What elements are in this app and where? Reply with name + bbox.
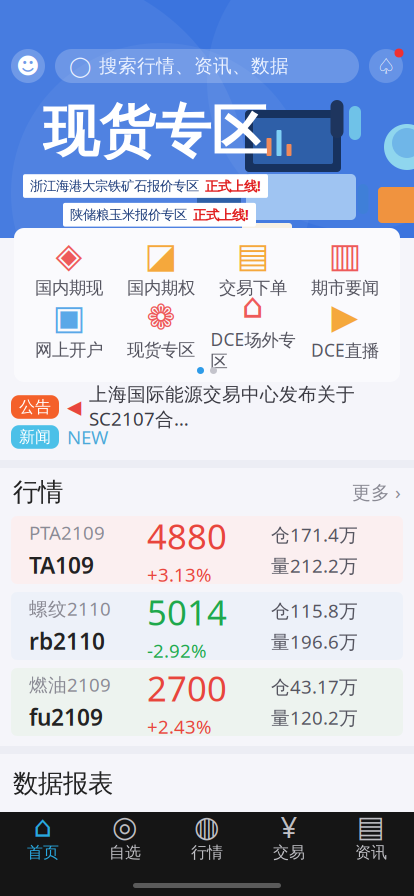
staticText: ▤ [236,236,269,275]
staticText: 国内期权 [127,277,195,299]
staticText: DCE场外专区 [210,328,295,372]
staticText: 量120.2万 [271,705,358,730]
button[interactable]: ◍ [166,812,248,864]
button[interactable]: 螺纹2110 [11,592,403,660]
staticText: 螺纹2110 [29,596,111,621]
button[interactable]: 新闻 [0,422,414,452]
staticText: ¥ [280,807,297,846]
staticText: rb2110 [29,626,105,656]
staticText: 新闻 [19,427,51,447]
staticText: 行情 [13,476,63,507]
staticText: 2700 [147,665,227,711]
staticText: 首页 [27,843,59,862]
button[interactable]: ▶ [299,300,391,362]
staticText: ◀ [67,396,81,418]
staticText: ▣ [52,298,85,337]
staticText: 正式上线! [193,206,249,224]
button[interactable]: ¥ [248,812,330,864]
button[interactable]: ◯ [55,49,359,83]
button[interactable]: ◎ [84,812,166,864]
button[interactable]: 通知 [369,49,403,83]
staticText: 量196.6万 [271,629,358,654]
button[interactable]: ⌂ [207,300,299,362]
staticText: ♤ [376,54,395,78]
staticText: ▤ [357,810,385,843]
staticText: NEW [67,425,108,449]
staticText: ◯ [69,55,91,77]
staticText: ⌂ [242,286,264,325]
staticText: 交易下单 [219,277,287,299]
staticText: 网上开户 [35,339,103,361]
staticText: 期市要闻 [311,277,379,299]
staticText: 仓171.4万 [271,522,358,547]
staticText: 量212.2万 [271,553,358,578]
button[interactable]: 公告 [0,392,414,422]
button[interactable]: ▤ [330,812,412,864]
staticText: +3.13% [147,562,212,587]
staticText: ◎ [112,810,138,843]
staticText: 资讯 [355,843,387,862]
staticText: TA109 [29,550,94,580]
staticText: 浙江海港大宗铁矿石报价专区 [30,178,199,194]
button[interactable]: ▥ [299,238,391,300]
staticText: 行情 [191,843,223,862]
staticText: 更多 › [352,480,401,504]
button[interactable]: PTA2109 [11,516,403,584]
staticText: 公告 [19,397,51,417]
staticText: 陕储粮玉米报价专区 [70,207,187,223]
staticText: +2.43% [147,714,212,739]
staticText: 交易 [273,843,305,862]
button[interactable]: 我的账户 [11,49,45,83]
button[interactable]: ▣ [23,300,115,362]
staticText: DCE直播 [311,338,379,361]
staticText: -2.92% [147,638,207,663]
staticText: 现货专区 [43,97,267,166]
staticText: 上海国际能源交易中心发布关于SC2107合… [89,383,355,431]
staticText: PTA2109 [29,520,105,545]
button[interactable]: ⌂ [2,812,84,864]
staticText: ◍ [194,810,220,843]
staticText: ⌂ [33,810,52,843]
staticText: ◈ [55,236,82,275]
staticText: ☻ [16,53,40,79]
staticText: 自选 [109,843,141,862]
staticText: 4880 [147,513,227,559]
staticText: 正式上线! [205,177,261,195]
button[interactable]: ▤ [207,238,299,300]
button[interactable]: ◈ [23,238,115,300]
button[interactable]: 燃油2109 [11,668,403,736]
staticText: ▶ [331,297,358,336]
staticText: 5014 [147,589,227,635]
staticText: 搜索行情、资讯、数据 [99,54,289,77]
staticText: 仓115.8万 [271,598,358,623]
button[interactable]: ❁ [115,300,207,362]
staticText: 现货专区 [127,339,195,361]
staticText: 仓43.17万 [271,674,358,699]
staticText: 国内期现 [35,277,103,299]
button[interactable]: 行情 [0,468,414,516]
staticText: 数据报表 [13,768,113,799]
button[interactable]: ◪ [115,238,207,300]
staticText: ❁ [146,298,175,337]
staticText: 燃油2109 [29,672,111,697]
staticText: ◪ [144,236,177,275]
staticText: fu2109 [29,702,103,732]
staticText: ▥ [328,236,361,275]
